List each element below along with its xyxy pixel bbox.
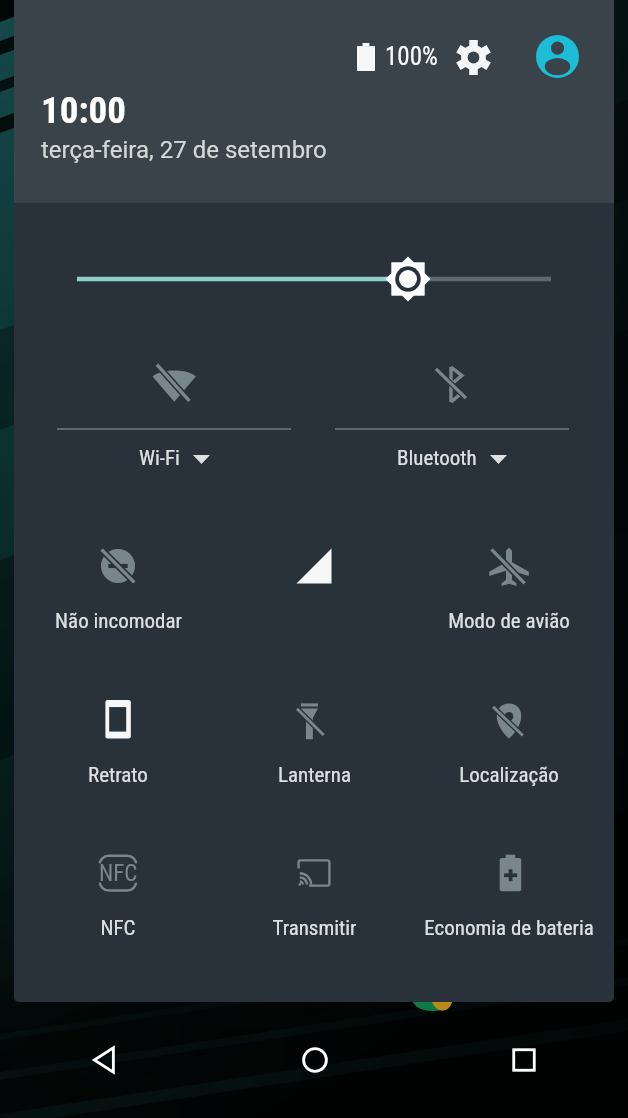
staticText: NFC: [99, 860, 138, 887]
staticText: Economia de bateria: [424, 916, 594, 941]
staticText: Retrato: [88, 763, 148, 788]
staticText: Transmitir: [272, 916, 357, 941]
button[interactable]: Home: [210, 1002, 419, 1118]
button[interactable]: Settings: [451, 35, 495, 79]
staticText: 10:00: [41, 89, 126, 132]
staticText: Lanterna: [278, 763, 351, 788]
staticText: Não incomodar: [55, 609, 182, 634]
staticText: 100%: [385, 42, 438, 71]
staticText: Modo de avião: [448, 609, 570, 634]
button[interactable]: Battery saver: [411, 825, 607, 937]
button[interactable]: Recents: [419, 1002, 628, 1118]
button[interactable]: Location: [411, 672, 607, 784]
staticText: Bluetooth: [397, 446, 477, 471]
staticText: terça-feira, 27 de setembro: [41, 136, 327, 164]
staticText: Wi-Fi: [139, 446, 180, 471]
button[interactable]: Cast: [216, 825, 412, 937]
button[interactable]: Airplane mode: [411, 518, 607, 630]
button[interactable]: Mobile data: [216, 518, 412, 630]
button[interactable]: Wi-Fi: [35, 348, 313, 478]
button[interactable]: Back: [0, 1002, 210, 1118]
button[interactable]: NFC: [20, 825, 216, 937]
staticText: NFC: [100, 916, 136, 941]
button[interactable]: Flashlight: [216, 672, 412, 784]
button[interactable]: Auto rotate: [20, 672, 216, 784]
button[interactable]: Bluetooth: [313, 348, 591, 478]
button[interactable]: User profile: [534, 33, 581, 80]
button[interactable]: Do not disturb: [20, 518, 216, 630]
staticText: Localização: [459, 763, 559, 788]
